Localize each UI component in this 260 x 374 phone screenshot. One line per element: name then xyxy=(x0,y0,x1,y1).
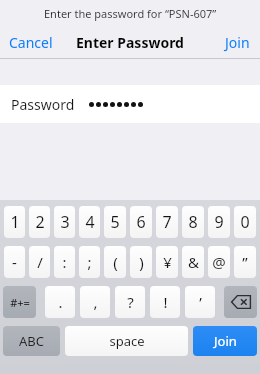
button[interactable]: 3 xyxy=(54,206,75,238)
button[interactable]: 5 xyxy=(104,206,126,238)
button[interactable]: 7 xyxy=(156,206,178,238)
button[interactable]: ¥ xyxy=(156,246,178,278)
staticText: space xyxy=(109,332,145,350)
staticText: / xyxy=(37,252,43,272)
button[interactable]: - xyxy=(4,246,25,278)
staticText: 0 xyxy=(240,211,250,233)
staticText: : xyxy=(62,252,67,272)
button[interactable]: 2 xyxy=(29,206,50,238)
button[interactable]: / xyxy=(29,246,50,278)
staticText: 9 xyxy=(214,211,224,233)
staticText: ? xyxy=(127,292,134,312)
button[interactable]: ’ xyxy=(185,286,215,318)
staticText: 2 xyxy=(35,211,45,233)
button[interactable]: ( xyxy=(104,246,126,278)
staticText: 8 xyxy=(188,211,198,233)
staticText: Password xyxy=(11,95,75,114)
button[interactable]: Join xyxy=(193,326,257,356)
staticText: ” xyxy=(242,252,248,272)
button[interactable]: Join xyxy=(222,28,253,57)
button[interactable]: 8 xyxy=(182,206,204,238)
staticText: . xyxy=(58,292,63,312)
button[interactable]: : xyxy=(54,246,75,278)
button[interactable]: #+= xyxy=(3,286,36,318)
staticText: Cancel xyxy=(9,33,53,52)
staticText: ! xyxy=(163,292,168,312)
button[interactable]: ) xyxy=(130,246,152,278)
staticText: 7 xyxy=(162,211,172,233)
staticText: @ xyxy=(212,252,226,272)
staticText: 3 xyxy=(60,211,70,233)
button[interactable]: . xyxy=(45,286,75,318)
staticText: #+= xyxy=(10,295,30,310)
staticText: ¥ xyxy=(163,252,172,272)
button[interactable]: & xyxy=(182,246,204,278)
staticText: ’ xyxy=(199,292,202,312)
staticText: ; xyxy=(87,252,92,272)
button[interactable]: ? xyxy=(115,286,145,318)
button[interactable]: ABC xyxy=(3,326,60,356)
button[interactable]: ; xyxy=(79,246,100,278)
button[interactable]: Password xyxy=(0,85,260,123)
button[interactable]: Cancel xyxy=(6,28,56,57)
button[interactable]: @ xyxy=(208,246,230,278)
button[interactable]: 1 xyxy=(4,206,25,238)
button[interactable]: ” xyxy=(234,246,256,278)
button[interactable]: space xyxy=(65,326,188,356)
staticText: Join xyxy=(214,332,237,350)
staticText: ( xyxy=(113,252,118,272)
button[interactable]: , xyxy=(80,286,110,318)
staticText: Join xyxy=(225,33,250,52)
button[interactable]: ! xyxy=(150,286,180,318)
staticText: 6 xyxy=(136,211,146,233)
button[interactable]: 0 xyxy=(234,206,256,238)
staticText: Enter Password xyxy=(76,33,184,52)
staticText: , xyxy=(93,292,98,312)
button[interactable]: 6 xyxy=(130,206,152,238)
button[interactable]: 9 xyxy=(208,206,230,238)
staticText: & xyxy=(188,252,199,272)
button[interactable]: 4 xyxy=(79,206,100,238)
button[interactable]: Delete xyxy=(224,286,257,318)
staticText: ABC xyxy=(19,332,44,350)
staticText: Enter the password for “PSN-607” xyxy=(44,6,217,21)
staticText: 5 xyxy=(110,211,120,233)
staticText: 4 xyxy=(85,211,95,233)
staticText: 1 xyxy=(10,211,20,233)
staticText: ) xyxy=(139,252,144,272)
staticText: - xyxy=(12,252,17,272)
